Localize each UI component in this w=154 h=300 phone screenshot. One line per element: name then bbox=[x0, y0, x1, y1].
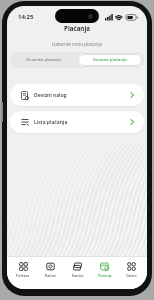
staticText: Izaberite vrstu plaćanja bbox=[0, 41, 154, 47]
staticText: Devizna plaćanja bbox=[93, 57, 127, 63]
button[interactable]: Devizni nalog bbox=[10, 84, 144, 106]
button[interactable]: Početna bbox=[9, 256, 37, 289]
button[interactable]: Devizna plaćanja bbox=[78, 54, 142, 66]
staticText: Kartice bbox=[72, 273, 84, 278]
staticText: Dinarska plaćanja bbox=[26, 57, 61, 63]
staticText: Ostalo bbox=[126, 273, 137, 278]
button[interactable]: Ostalo bbox=[118, 256, 145, 289]
staticText: Računi bbox=[45, 273, 56, 278]
button[interactable]: Dinarska plaćanja bbox=[10, 52, 77, 68]
staticText: 14:25 bbox=[18, 13, 34, 21]
staticText: Početna bbox=[16, 273, 30, 278]
staticText: Plaćanja bbox=[98, 273, 112, 278]
button[interactable]: Kartice bbox=[64, 256, 91, 289]
staticText: Lista plaćanja bbox=[34, 119, 68, 126]
button[interactable]: Lista plaćanja bbox=[10, 111, 144, 133]
staticText: Devizni nalog bbox=[34, 92, 67, 99]
button[interactable]: Plaćanja bbox=[91, 256, 118, 289]
button[interactable]: Računi bbox=[37, 256, 64, 289]
staticText: Plaćanja bbox=[0, 24, 154, 32]
